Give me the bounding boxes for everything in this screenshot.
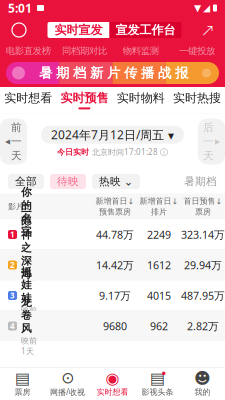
staticText: 天	[203, 149, 214, 162]
staticText: 实时想看	[4, 91, 52, 105]
staticText: 映前4天	[21, 305, 37, 326]
staticText: 一键投放	[179, 45, 215, 57]
staticText: 2249	[147, 227, 171, 242]
button[interactable]: 首日预售↓	[181, 194, 225, 218]
staticText: 二郎神之深海蛟龙	[21, 202, 32, 307]
button[interactable]: 宣发工作台	[109, 22, 181, 38]
staticText: 5:01	[8, 0, 32, 16]
staticText: 影片↓	[8, 202, 31, 211]
button[interactable]: ☻	[180, 369, 225, 399]
button[interactable]: 一键投放	[169, 44, 225, 58]
staticText: 同档期对比	[62, 45, 107, 57]
button[interactable]: Search	[6, 17, 32, 43]
button[interactable]: 2	[0, 250, 225, 280]
staticText: 票房	[195, 207, 211, 217]
button[interactable]: 新增首日↓	[93, 194, 137, 218]
staticText: 实时宣发	[54, 23, 102, 37]
button[interactable]: 实时热搜	[169, 87, 225, 113]
staticText: 电影直发榜	[6, 45, 51, 57]
staticText: ▤	[150, 369, 165, 387]
button[interactable]: 同档期对比	[56, 44, 112, 58]
staticText: ⊙	[61, 369, 74, 387]
button[interactable]: Previous day	[0, 118, 27, 164]
staticText: 映前1天	[21, 336, 37, 356]
staticText: 实时想看	[96, 387, 128, 397]
button[interactable]: 电影直发榜	[0, 44, 56, 58]
button[interactable]: 实时预售	[56, 87, 112, 113]
staticText: 宣发工作台	[115, 23, 175, 37]
staticText: 票房	[14, 387, 30, 397]
staticText: 一	[203, 135, 214, 148]
staticText: 暑 期 档 新 片 传 播 战 报	[39, 65, 188, 81]
button[interactable]: 2024年7月12日/周五 ▾	[41, 126, 184, 144]
staticText: 3	[10, 290, 15, 301]
staticText: 323.14万	[181, 227, 225, 242]
button[interactable]: ▤	[135, 369, 180, 399]
button[interactable]: 实时想看	[0, 87, 56, 113]
button[interactable]: 全部	[8, 174, 44, 189]
button[interactable]: 新增首日↓	[137, 194, 181, 218]
staticText: 物料监测	[123, 45, 159, 57]
button[interactable]: 实时宣发	[47, 22, 109, 38]
staticText: ▤	[15, 369, 30, 387]
staticText: 暑期档	[184, 175, 217, 188]
staticText: 天	[11, 149, 22, 162]
button[interactable]: Next day	[198, 118, 225, 164]
staticText: 北京时间17:01:28 ⓘ	[92, 147, 168, 157]
staticText: 2.82万	[187, 319, 219, 333]
staticText: 实时物料	[117, 91, 165, 105]
staticText: 预售票房	[99, 207, 131, 217]
staticText: 前	[11, 121, 22, 134]
staticText: 29.94万	[184, 258, 222, 272]
staticText: ◀	[5, 138, 10, 145]
staticText: 14.42万	[96, 258, 134, 272]
staticText: 2024年7月12日/周五 ▾	[51, 127, 174, 143]
staticText: 网播/收视	[50, 387, 85, 397]
staticText: 全部	[15, 175, 37, 188]
staticText: ◉	[105, 369, 119, 387]
staticText: 44.78万	[96, 227, 134, 242]
button[interactable]: ⊙	[45, 369, 90, 399]
staticText: 962	[150, 319, 168, 333]
staticText: 映前1天	[21, 308, 37, 328]
button[interactable]: ▤	[0, 369, 45, 399]
button[interactable]: Share	[197, 17, 219, 43]
staticText: 07-19重映	[21, 252, 37, 283]
staticText: 487.95万	[181, 288, 225, 303]
button[interactable]: 4	[0, 311, 225, 341]
staticText: 1612	[147, 258, 171, 272]
staticText: 1	[10, 229, 15, 240]
button[interactable]: 待映	[50, 174, 86, 189]
staticText: 你的名字。	[21, 186, 32, 251]
button[interactable]: 暑 期 档 新 片 传 播 战 报	[0, 58, 225, 87]
button[interactable]: 物料监测	[112, 44, 169, 58]
staticText: ▶	[215, 138, 220, 145]
staticText: 排片	[151, 207, 167, 217]
staticText: 9680	[103, 319, 127, 333]
staticText: 龙卷风	[21, 296, 32, 335]
staticText: ◢	[203, 3, 210, 13]
button[interactable]: 1	[0, 219, 225, 249]
button[interactable]: 3	[0, 280, 225, 310]
staticText: 后	[203, 121, 214, 134]
staticText: 抓娃娃	[21, 265, 32, 304]
staticText: 9.17万	[99, 288, 131, 303]
button[interactable]: 实时物料	[112, 87, 169, 113]
staticText: 2	[10, 260, 15, 270]
button[interactable]: 暑期档	[184, 174, 217, 189]
button[interactable]: ◉	[90, 369, 135, 399]
staticText: 影视头条	[141, 387, 173, 397]
staticText: 4015	[147, 288, 171, 303]
staticText: ☻	[194, 369, 211, 387]
staticText: 首日预售↓	[183, 196, 222, 206]
staticText: 实时预售	[60, 91, 108, 105]
staticText: 我的	[194, 387, 210, 397]
staticText: 一	[11, 135, 22, 148]
staticText: ▼	[194, 3, 201, 13]
staticText: 待映	[57, 175, 79, 188]
staticText: 新增首日↓	[95, 196, 134, 206]
staticText: ↗	[200, 20, 215, 40]
staticText: 今日实时	[57, 147, 89, 157]
button[interactable]: 热映 ⌄	[92, 174, 140, 189]
staticText: 4	[10, 321, 15, 331]
